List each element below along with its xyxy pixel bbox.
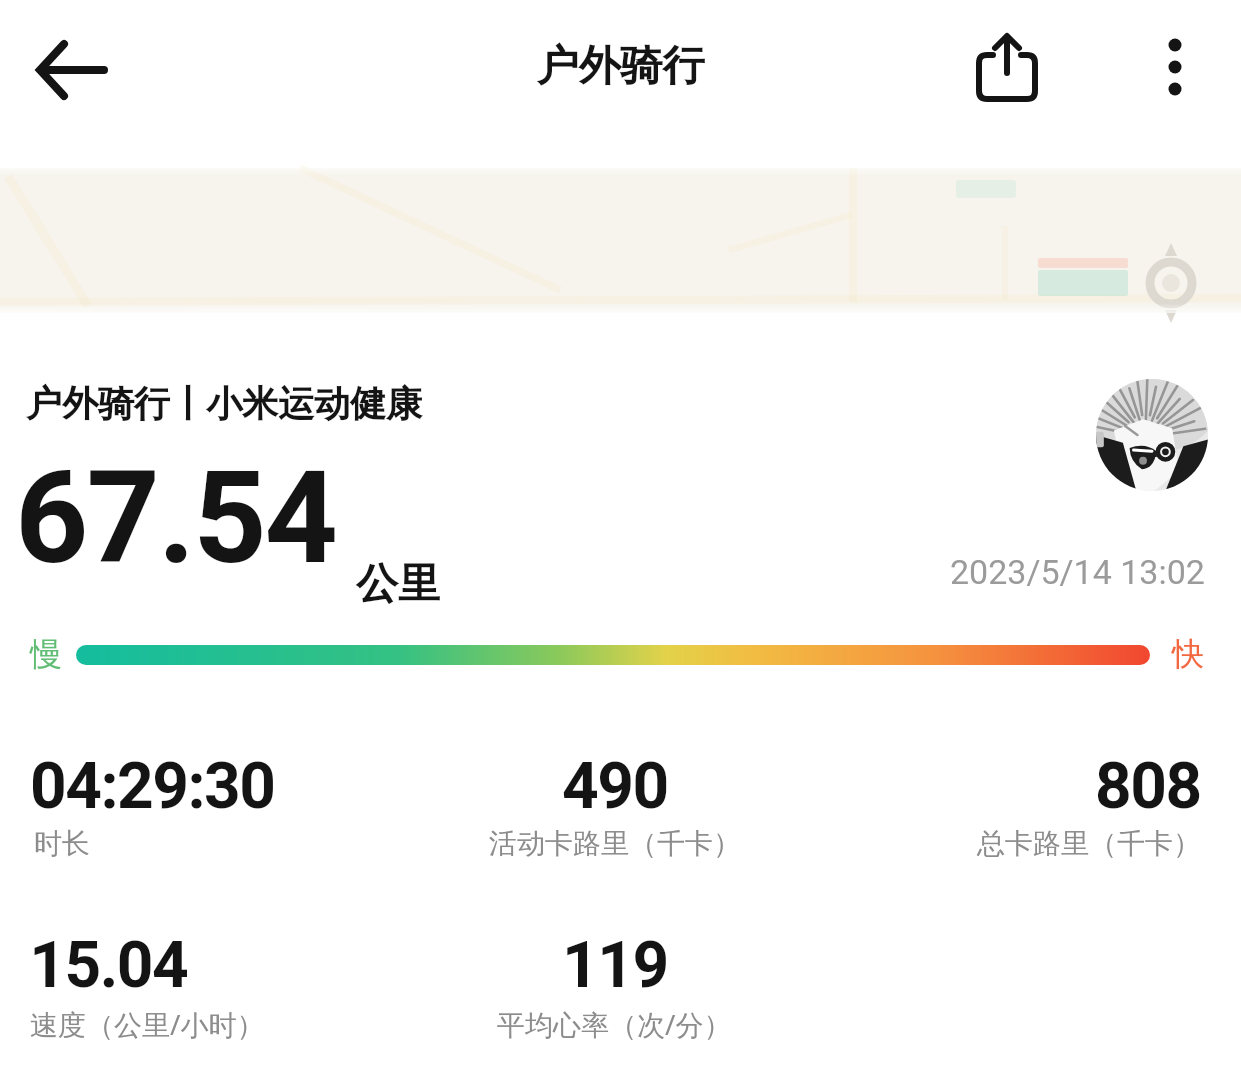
staticText: 户外骑行丨小米运动健康 [26,381,422,426]
staticText: 2023/5/14 13:02 [950,552,1205,592]
staticText: 04:29:30 [30,749,275,824]
staticText: 808 [1095,749,1201,824]
staticText: 活动卡路里（千卡） [489,826,741,861]
staticText: 490 [562,749,668,824]
staticText: 快 [1172,634,1204,674]
staticText: 时长 [34,826,90,861]
staticText: 总卡路里（千卡） [977,826,1201,861]
staticText: 户外骑行 [0,40,1241,93]
button[interactable] [24,30,120,110]
staticText: 速度（公里/小时） [30,1005,265,1043]
button[interactable] [1142,22,1208,112]
button[interactable] [1096,379,1208,491]
staticText: 公里 [356,558,440,611]
staticText: 15.04 [30,928,188,1003]
staticText: 67.54 [16,443,337,593]
staticText: 慢 [30,634,62,674]
staticText: 119 [562,928,668,1003]
staticText: 平均心率（次/分） [497,1005,732,1043]
button[interactable] [962,18,1052,114]
